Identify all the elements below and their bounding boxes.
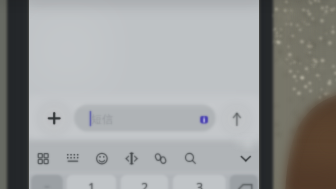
button[interactable]: Emoji [91,148,113,170]
button[interactable]: Backspace [230,175,258,189]
button[interactable]: 3 [173,175,222,189]
button[interactable]: Add attachment [41,105,68,132]
button[interactable]: 1 [67,175,116,189]
button[interactable]: Send [224,107,250,132]
button[interactable]: Symbols [31,175,63,189]
button[interactable]: Hide keyboard [235,148,257,170]
button[interactable]: 2 [121,175,168,189]
button[interactable]: Message input field [74,104,216,132]
button[interactable]: Move text cursor [121,148,143,170]
button[interactable]: Clipboard [150,148,172,170]
button[interactable]: Search [180,148,202,170]
button[interactable]: Apps [32,148,54,170]
button[interactable]: Keyboard [62,148,84,170]
